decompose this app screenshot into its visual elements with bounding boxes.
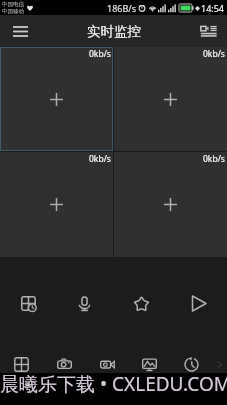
button[interactable]: 0kb/s (0, 152, 113, 257)
button[interactable]: Device list (189, 15, 227, 47)
button[interactable]: Microphone (56, 281, 113, 326)
staticText: 晨曦乐下载 • CXLEDU.COM (0, 371, 227, 397)
staticText: 0kb/s (89, 48, 111, 60)
button[interactable]: Play (170, 281, 227, 326)
button[interactable]: 0kb/s (114, 47, 227, 151)
button[interactable]: Grid view (0, 348, 43, 380)
staticText: 14:54 (201, 2, 225, 14)
staticText: 中国电信 (2, 1, 24, 8)
button[interactable]: History (170, 348, 212, 380)
staticText: 186B/s (107, 2, 136, 14)
button[interactable]: Snapshot (43, 348, 86, 380)
staticText: 实时监控 (87, 23, 141, 40)
button[interactable]: Record video (86, 348, 128, 380)
button[interactable]: Split screen layout (0, 281, 56, 326)
button[interactable]: 0kb/s (114, 152, 227, 257)
button[interactable]: More (212, 348, 227, 380)
staticText: 0kb/s (89, 153, 111, 165)
staticText: 0kb/s (203, 48, 225, 60)
button[interactable]: Menu (0, 15, 41, 47)
staticText: 中国移动 (2, 8, 24, 15)
button[interactable]: Favorite (113, 281, 170, 326)
staticText: 0kb/s (203, 153, 225, 165)
button[interactable]: Gallery (128, 348, 170, 380)
button[interactable]: 0kb/s (0, 47, 113, 151)
